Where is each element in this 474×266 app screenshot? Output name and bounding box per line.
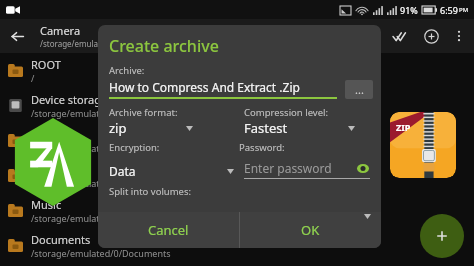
button[interactable]: Data (ZipCrypto) xyxy=(109,163,234,179)
button[interactable]: Back xyxy=(0,19,34,53)
staticText: Password: xyxy=(239,141,370,154)
staticText: Compression level: xyxy=(244,106,329,119)
button[interactable]: How to Compress And Extract .Zip xyxy=(109,79,337,99)
button[interactable]: Create xyxy=(420,214,464,258)
staticText: /storage/emulated/0/Download xyxy=(31,177,165,189)
staticText: ... xyxy=(355,82,364,97)
staticText: Encryption: xyxy=(109,141,239,154)
staticText: ROOT xyxy=(31,57,61,72)
staticText: Archive: xyxy=(109,64,145,77)
button[interactable]: Download xyxy=(0,158,474,193)
staticText: Cancel xyxy=(148,221,189,239)
button[interactable]: Cancel xyxy=(98,212,239,248)
button[interactable]: Add xyxy=(416,21,446,51)
button[interactable]: Music xyxy=(0,193,474,228)
button[interactable]: OK xyxy=(240,212,381,248)
staticText: How to Compress And Extract .Zip xyxy=(109,79,300,95)
button[interactable]: Enter password xyxy=(244,160,370,179)
staticText: Download xyxy=(31,162,84,177)
staticText: Music xyxy=(31,197,62,212)
staticText: SD card xyxy=(31,127,71,142)
staticText: Fastest xyxy=(244,119,288,137)
staticText: ZIP xyxy=(396,121,411,133)
staticText: / xyxy=(31,72,35,84)
staticText: Archive format: xyxy=(109,106,178,119)
staticText: 91% xyxy=(400,4,418,16)
staticText: /storage/emulated/0/Music xyxy=(31,212,147,224)
staticText: OK xyxy=(301,221,320,239)
staticText: Camera xyxy=(40,23,81,38)
staticText: Create archive xyxy=(109,35,219,57)
staticText: /storage/emulated/0/Documents xyxy=(31,247,171,259)
button[interactable]: SD card xyxy=(0,123,474,158)
staticText: Split into volumes: xyxy=(109,185,192,198)
staticText: /storage/emulated/0 xyxy=(31,107,119,119)
staticText: PM xyxy=(459,6,469,14)
staticText: Data (ZipCrypto) xyxy=(109,163,168,179)
button[interactable]: Documents xyxy=(0,228,474,263)
button[interactable]: Device storage xyxy=(0,88,474,123)
button[interactable]: zip xyxy=(109,119,234,137)
staticText: Enter password xyxy=(244,160,353,176)
staticText: 6:59 xyxy=(440,4,458,16)
button[interactable]: Show password xyxy=(356,161,370,175)
button[interactable]: Select all xyxy=(386,21,416,51)
staticText: /storage/emulated/0/DCIM xyxy=(40,38,142,49)
button[interactable]: More options xyxy=(446,23,472,49)
staticText: Device storage xyxy=(31,92,108,107)
staticText: /storage/emulated/0/Download xyxy=(31,142,165,154)
staticText: Documents xyxy=(31,232,91,247)
button[interactable]: ROOT xyxy=(0,53,474,88)
staticText: zip xyxy=(109,119,127,137)
button[interactable]: Browse xyxy=(345,80,373,99)
button[interactable]: Fastest xyxy=(244,119,370,137)
